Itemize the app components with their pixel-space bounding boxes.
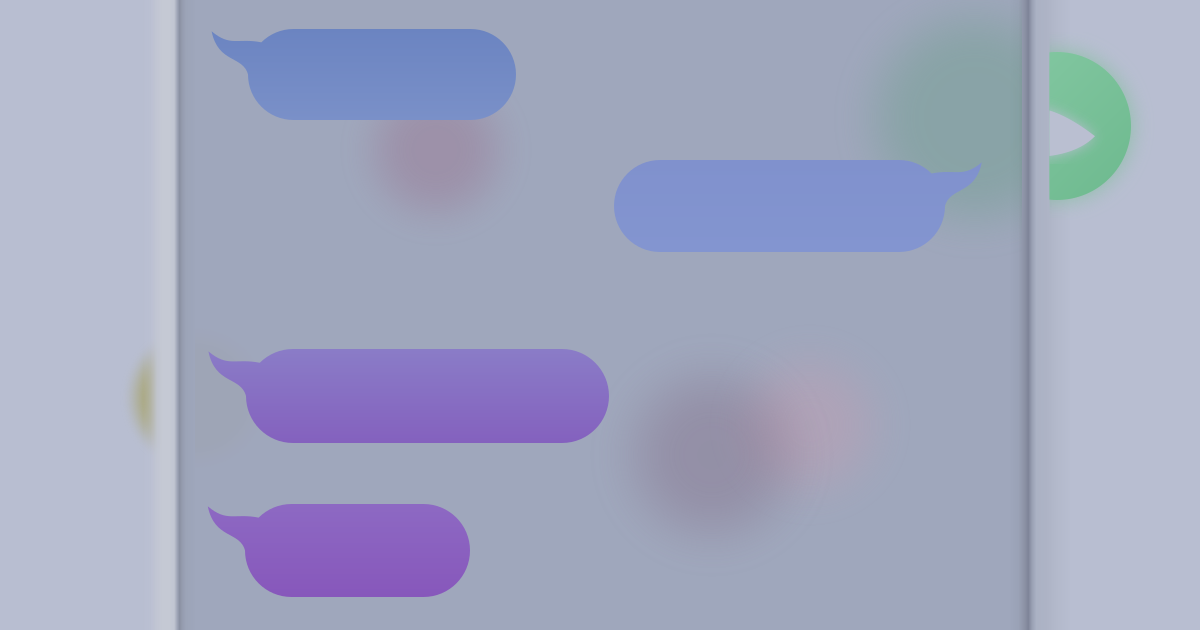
- button[interactable]: [212, 29, 516, 120]
- button[interactable]: [208, 349, 609, 443]
- button[interactable]: [208, 504, 470, 597]
- button[interactable]: [614, 160, 982, 252]
